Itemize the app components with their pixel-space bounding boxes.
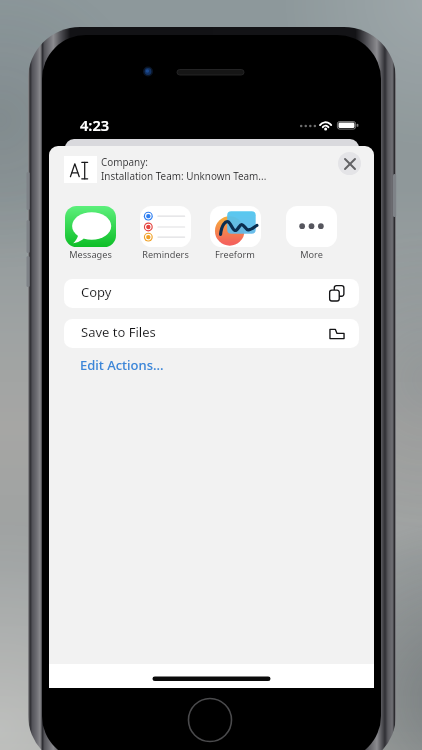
button[interactable]: Messages: [64, 206, 116, 261]
staticText: Messages: [69, 248, 112, 261]
button[interactable]: Copy: [64, 279, 359, 308]
button[interactable]: More: [285, 206, 337, 261]
staticText: Company:: [101, 155, 148, 168]
button[interactable]: Save to Files: [64, 319, 359, 348]
staticText: Edit Actions...: [80, 356, 164, 374]
staticText: Copy: [81, 283, 112, 301]
staticText: 4:23: [80, 115, 110, 135]
button[interactable]: Edit Actions...: [78, 354, 166, 376]
button[interactable]: Reminders: [139, 206, 191, 261]
button[interactable]: Close: [338, 152, 361, 175]
button[interactable]: Freeform: [209, 206, 261, 261]
staticText: Reminders: [142, 248, 189, 261]
staticText: Installation Team: Unknown Team...: [101, 169, 267, 182]
staticText: Save to Files: [81, 323, 156, 341]
staticText: Freeform: [215, 248, 255, 261]
staticText: More: [300, 248, 323, 261]
